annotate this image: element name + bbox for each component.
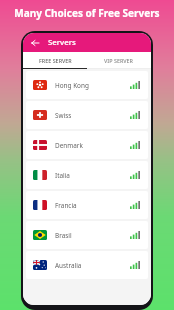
button[interactable]: Francia — [26, 191, 148, 219]
staticText: Australia — [55, 261, 82, 270]
button[interactable]: Hong Kong — [26, 71, 148, 99]
staticText: Hong Kong — [55, 81, 89, 90]
staticText: Denmark — [55, 141, 83, 150]
staticText: Brasil — [55, 231, 72, 240]
staticText: Many Choices of Free Servers — [0, 6, 174, 20]
button[interactable]: Back — [29, 37, 40, 48]
button[interactable]: Italia — [26, 161, 148, 189]
button[interactable]: VIP SERVER — [87, 52, 151, 68]
staticText: Swiss — [55, 111, 72, 120]
staticText: FREE SERVER — [39, 57, 72, 64]
staticText: Servers — [48, 37, 76, 48]
staticText: Francia — [55, 201, 77, 210]
staticText: Italia — [55, 171, 70, 180]
button[interactable]: Denmark — [26, 131, 148, 159]
button[interactable]: Australia — [26, 251, 148, 279]
button[interactable]: Brasil — [26, 221, 148, 249]
button[interactable]: FREE SERVER — [23, 52, 87, 68]
button[interactable]: Back — [23, 33, 151, 52]
button[interactable]: Swiss — [26, 101, 148, 129]
staticText: VIP SERVER — [104, 57, 134, 64]
